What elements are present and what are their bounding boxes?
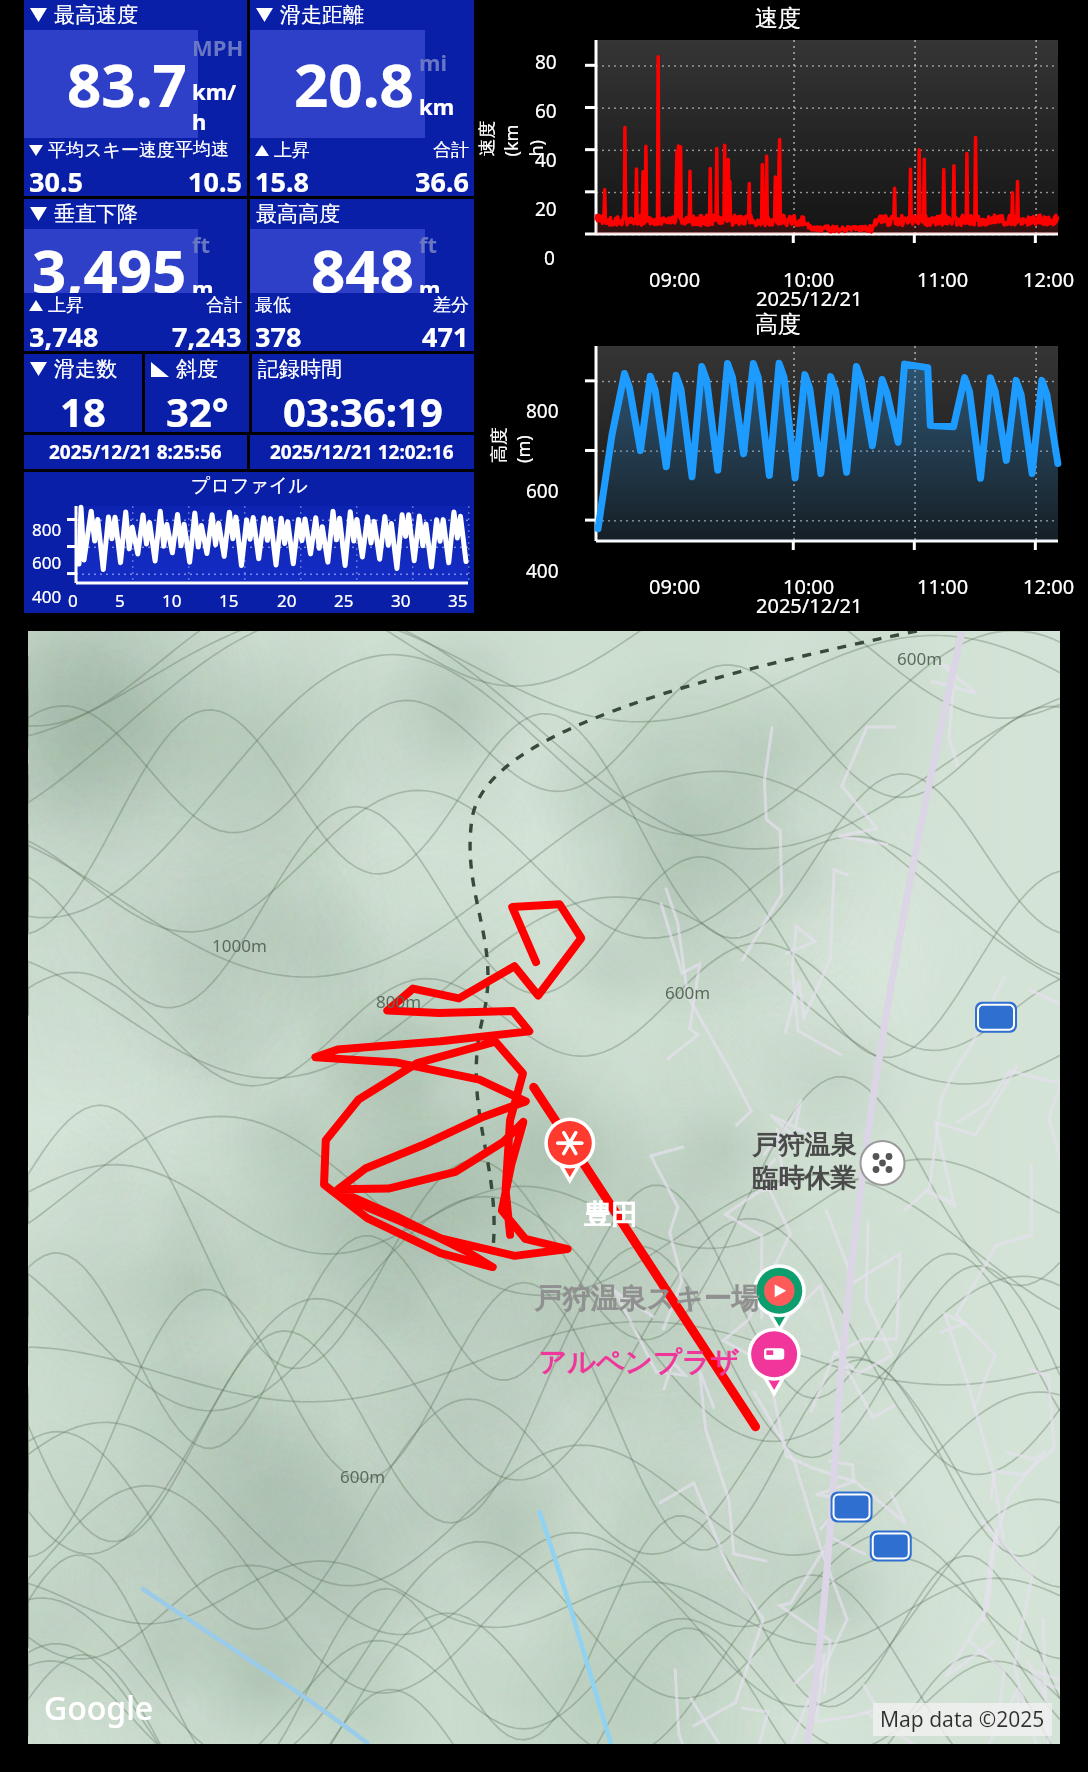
staticText: 高度 [755,310,801,339]
staticText: 豊田 [584,1198,638,1232]
staticText: 最低 [255,294,291,317]
staticText: 最高速度 [54,2,138,28]
staticText: 上昇 [274,139,310,162]
button[interactable]: 滑走数 [24,354,142,432]
staticText: m [419,273,441,293]
button[interactable]: 最高速度 [24,0,247,196]
button[interactable]: 記録時間 [252,354,474,432]
staticText: 戸狩温泉 [752,1129,856,1162]
staticText: 11:00 [917,266,969,293]
staticText: 30.5 [29,163,83,196]
staticText: 10:00 [783,573,835,600]
staticText: 平均速度 [175,138,242,163]
staticText: 3,748 [29,318,99,351]
staticText: 32° [166,384,229,432]
staticText: 10.5 [188,163,242,196]
staticText: MPH [192,32,244,62]
staticText: 2025/12/21 [756,285,863,312]
staticText: 12:00 [1023,266,1075,293]
staticText: 20.8 [294,43,414,125]
staticText: 2025/12/21 [756,592,863,619]
button[interactable]: 垂直下降 [24,199,247,351]
staticText: 80 [535,49,557,75]
staticText: 471 [422,318,469,351]
staticText: 速度 [755,4,801,33]
staticText: 600m [665,981,711,1004]
staticText: 戸狩温泉スキー場 [534,1281,760,1316]
staticText: ft [192,229,211,259]
staticText: 600 [32,551,62,574]
staticText: 臨時休業 [752,1162,856,1195]
button[interactable]: 斜度 [145,354,249,432]
staticText: 36.6 [415,163,469,196]
staticText: 5 [115,589,125,612]
staticText: 2025/12/21 12:02:16 [270,439,454,465]
staticText: 1000m [212,934,267,957]
staticText: 20 [535,196,557,222]
staticText: 垂直下降 [54,201,138,227]
staticText: 800 [32,518,62,541]
staticText: 上昇 [48,294,84,317]
staticText: 600m [340,1465,386,1488]
staticText: 速度 (kmh) [473,118,548,156]
staticText: 高度 (m) [486,425,536,463]
button[interactable]: 最高高度 [250,199,474,351]
staticText: 800m [376,990,422,1013]
staticText: km [419,91,455,121]
staticText: 15 [219,589,239,612]
staticText: 20 [277,589,297,612]
staticText: 記録時間 [258,356,342,382]
button[interactable]: 滑走距離 [250,0,474,196]
staticText: 合計 [433,139,469,162]
staticText: 斜度 [176,356,218,382]
staticText: 18 [60,384,106,432]
staticText: 600m [897,647,943,670]
staticText: ft [419,229,438,259]
staticText: 83.7 [67,43,187,125]
staticText: 25 [334,589,354,612]
staticText: 600 [526,478,559,504]
staticText: 差分 [433,294,469,317]
staticText: 35 [448,589,468,612]
staticText: アルペンプラザ [538,1345,739,1380]
staticText: 09:00 [649,266,701,293]
staticText: mi [419,47,448,77]
staticText: 848 [311,229,414,293]
staticText: Map data ©2025 [880,1705,1045,1734]
staticText: 滑走距離 [280,2,364,28]
staticText: km/h [192,76,247,136]
staticText: 合計 [206,294,242,317]
staticText: 滑走数 [54,356,117,382]
staticText: 15.8 [255,163,309,196]
staticText: プロファイル [191,474,308,498]
staticText: 400 [526,558,559,584]
staticText: m [192,273,214,293]
staticText: 12:00 [1023,573,1075,600]
staticText: 7,243 [172,318,242,351]
staticText: 60 [535,98,557,124]
staticText: Google [44,1686,154,1730]
button[interactable]: 2025/12/21 8:25:56 [24,435,247,469]
staticText: 2025/12/21 8:25:56 [49,439,222,465]
staticText: 11:00 [917,573,969,600]
staticText: 378 [255,318,302,351]
button[interactable]: 2025/12/21 12:02:16 [250,435,474,469]
staticText: 0 [68,589,78,612]
staticText: 平均スキー速度 [48,139,175,162]
staticText: 40 [535,147,557,173]
staticText: 0 [544,245,555,271]
staticText: 30 [391,589,411,612]
staticText: 400 [32,585,62,608]
staticText: 10 [162,589,182,612]
button[interactable]: Ski track map [28,631,1060,1744]
staticText: 最高高度 [256,201,340,227]
staticText: 10:00 [783,266,835,293]
staticText: 3,495 [32,229,187,293]
staticText: 09:00 [649,573,701,600]
staticText: 800 [526,398,559,424]
staticText: 03:36:19 [283,384,443,432]
